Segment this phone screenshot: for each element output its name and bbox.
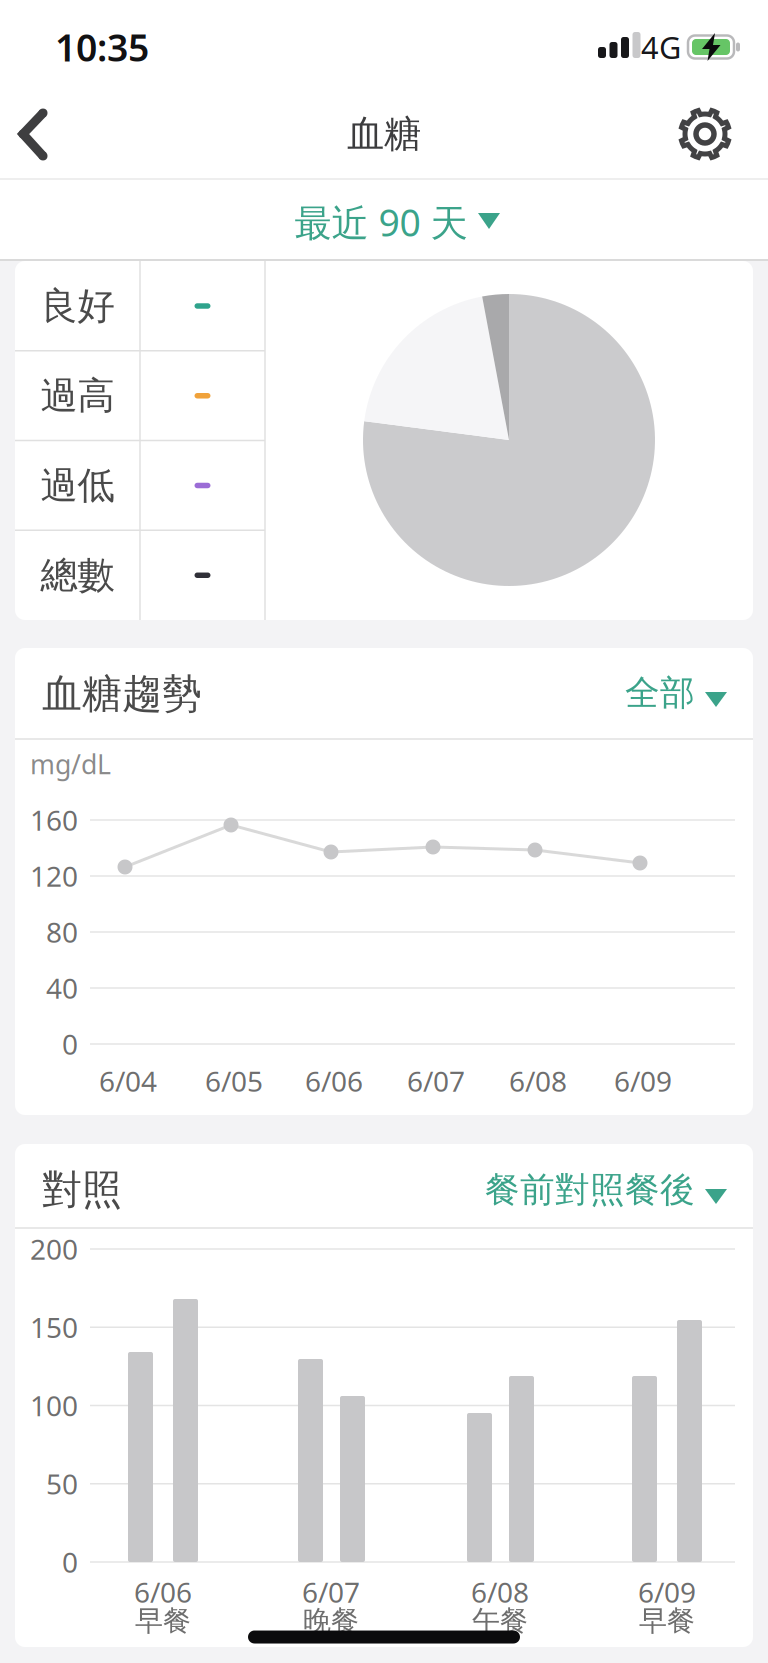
staticText: 6/06 — [305, 1062, 363, 1100]
button[interactable]: 最近 90 天 — [0, 180, 768, 259]
staticText: 晚餐 — [303, 1604, 359, 1638]
staticText: 10:35 — [55, 22, 149, 72]
staticText: 最近 90 天 — [294, 197, 467, 247]
staticText: mg/dL — [30, 746, 111, 782]
staticText: 早餐 — [639, 1604, 695, 1638]
staticText: 早餐 — [135, 1604, 191, 1638]
staticText: 全部 — [625, 672, 695, 714]
staticText: 160 — [30, 801, 78, 839]
staticText: 對照 — [42, 1165, 122, 1214]
staticText: 6/07 — [407, 1062, 465, 1100]
button[interactable] — [8, 99, 68, 169]
button[interactable]: 餐前對照餐後 — [470, 1157, 740, 1223]
staticText: 40 — [46, 969, 78, 1007]
staticText: 100 — [30, 1387, 78, 1424]
staticText: 過高 — [40, 373, 114, 419]
staticText: 200 — [30, 1230, 78, 1268]
staticText: 0 — [62, 1025, 78, 1063]
staticText: 血糖趨勢 — [42, 669, 202, 718]
staticText: 0 — [62, 1543, 78, 1581]
staticText: 6/05 — [205, 1062, 263, 1100]
staticText: 過低 — [40, 463, 114, 508]
staticText: 6/04 — [99, 1062, 157, 1100]
staticText: 6/08 — [509, 1062, 567, 1100]
staticText: 6/09 — [614, 1062, 672, 1100]
staticText: 血糖 — [347, 111, 421, 157]
staticText: 餐前對照餐後 — [485, 1169, 695, 1211]
staticText: 6/09 — [638, 1573, 696, 1611]
staticText: 150 — [30, 1309, 78, 1346]
staticText: 6/06 — [134, 1573, 192, 1611]
staticText: 120 — [30, 857, 78, 895]
staticText: 6/07 — [302, 1573, 360, 1611]
staticText: 午餐 — [472, 1604, 528, 1638]
staticText: 50 — [46, 1465, 78, 1502]
button[interactable]: 全部 — [610, 660, 740, 726]
staticText: 80 — [46, 913, 78, 951]
button[interactable] — [673, 102, 737, 166]
staticText: 總數 — [40, 552, 114, 598]
staticText: 4G — [641, 27, 681, 67]
staticText: 良好 — [40, 283, 114, 329]
staticText: 6/08 — [471, 1573, 529, 1611]
